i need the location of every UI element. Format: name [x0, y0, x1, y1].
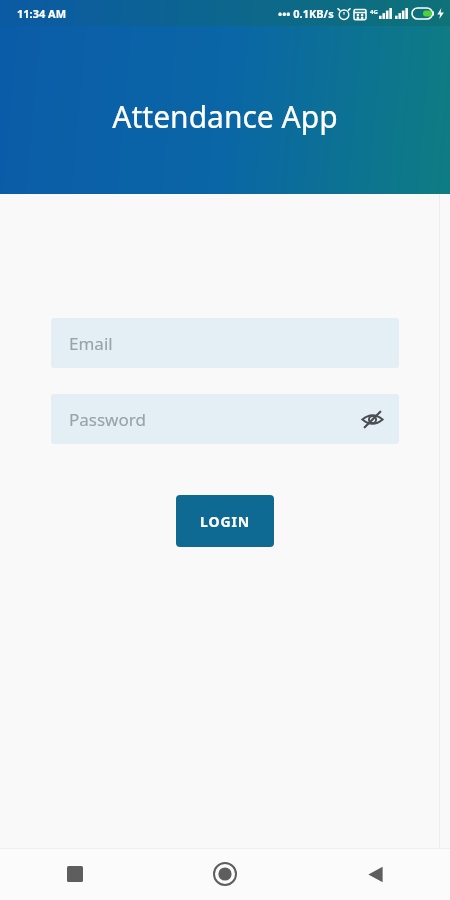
- button[interactable]: LOGIN: [176, 495, 274, 547]
- button[interactable]: Recent apps: [0, 848, 150, 900]
- staticText: ••• 0.1KB/s: [278, 6, 334, 21]
- staticText: Email: [69, 332, 113, 355]
- staticText: Attendance App: [0, 96, 450, 137]
- button[interactable]: Show password: [355, 402, 389, 436]
- staticText: 11:34 AM: [17, 6, 67, 21]
- button[interactable]: Password: [51, 394, 399, 444]
- staticText: Password: [69, 408, 146, 431]
- button[interactable]: Back: [300, 848, 450, 900]
- button[interactable]: Email: [51, 318, 399, 368]
- staticText: LOGIN: [200, 512, 251, 531]
- button[interactable]: Home: [150, 848, 300, 900]
- staticText: 4G: [370, 8, 378, 16]
